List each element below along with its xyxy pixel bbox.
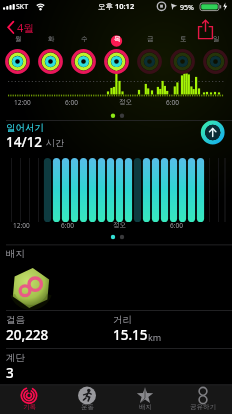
staticText: 일어서기 — [6, 122, 44, 134]
staticText: 수 — [81, 35, 88, 43]
staticText: 6:00 — [61, 221, 74, 230]
button[interactable]: 목 — [101, 35, 133, 77]
staticText: 오후 10:12 — [98, 1, 135, 11]
staticText: 배지 — [139, 403, 152, 411]
staticText: 토 — [180, 35, 187, 43]
button[interactable]: 일 — [200, 35, 232, 77]
staticText: 배지 — [6, 248, 25, 260]
button[interactable] — [11, 268, 51, 308]
staticText: 목 — [114, 35, 121, 43]
staticText: 일 — [213, 35, 220, 43]
staticText: 거리 — [113, 314, 132, 326]
button[interactable]: 월 — [2, 35, 34, 77]
staticText: 12:00 — [14, 98, 31, 107]
staticText: km — [148, 331, 162, 343]
staticText: 14/12 — [6, 133, 43, 151]
staticText: 월 — [15, 35, 22, 43]
staticText: SKT — [16, 2, 29, 12]
staticText: 6:00 — [65, 98, 78, 107]
button[interactable]: 화 — [35, 35, 67, 77]
staticText: 6:00 — [170, 221, 183, 230]
staticText: 화 — [48, 35, 55, 43]
staticText: 시간 — [46, 137, 64, 148]
staticText: 걸음 — [6, 314, 25, 326]
staticText: 정오 — [113, 221, 126, 229]
staticText: 95% — [180, 3, 194, 13]
button[interactable]: 공유하기 — [174, 385, 232, 414]
button[interactable]: 토 — [167, 35, 199, 77]
staticText: 계단 — [6, 352, 25, 364]
staticText: 20,228 — [6, 326, 49, 344]
staticText: 운동 — [81, 403, 94, 411]
staticText: 공유하기 — [190, 403, 216, 411]
staticText: 4월 — [17, 20, 35, 35]
button[interactable] — [194, 20, 218, 42]
staticText: 정오 — [119, 98, 132, 106]
button[interactable]: 금 — [134, 35, 166, 77]
staticText: 15.15 — [113, 326, 148, 344]
staticText: 금 — [147, 35, 154, 43]
button[interactable]: 기록 — [0, 385, 58, 414]
button[interactable]: 운동 — [58, 385, 116, 414]
staticText: 3 — [6, 364, 14, 382]
button[interactable]: 수 — [68, 35, 100, 77]
staticText: 기록 — [23, 403, 36, 411]
button[interactable]: 4월 — [4, 17, 48, 37]
staticText: 12:00 — [13, 221, 30, 230]
button[interactable] — [202, 122, 224, 144]
button[interactable]: 배지 — [116, 385, 174, 414]
staticText: 6:00 — [166, 98, 179, 107]
